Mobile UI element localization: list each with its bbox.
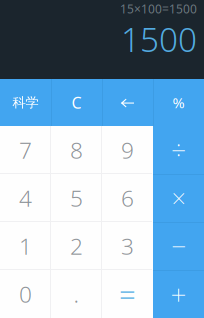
staticText: 7 [19, 135, 32, 165]
button[interactable]: . [51, 270, 102, 318]
staticText: 1500 [121, 17, 197, 61]
button[interactable]: 0 [0, 270, 51, 318]
button[interactable]: 科学 [0, 79, 51, 126]
staticText: 4 [19, 183, 32, 213]
button[interactable]: − [153, 222, 204, 270]
button[interactable]: 3 [102, 222, 153, 270]
staticText: 9 [121, 135, 134, 165]
button[interactable]: % [153, 79, 204, 126]
button[interactable]: 1 [0, 222, 51, 270]
button[interactable]: Backspace [102, 79, 153, 126]
button[interactable]: 2 [51, 222, 102, 270]
button[interactable]: ÷ [153, 126, 204, 174]
staticText: = [119, 274, 136, 313]
staticText: 6 [121, 183, 134, 213]
staticText: 3 [121, 231, 134, 261]
staticText: 8 [70, 135, 83, 165]
button[interactable]: 6 [102, 174, 153, 222]
staticText: % [172, 93, 184, 112]
staticText: 1 [19, 231, 32, 261]
staticText: 2 [70, 231, 83, 261]
staticText: ÷ [171, 132, 186, 168]
button[interactable]: C [51, 79, 102, 126]
staticText: − [171, 228, 186, 264]
button[interactable]: = [102, 270, 153, 318]
button[interactable]: 5 [51, 174, 102, 222]
button[interactable]: 8 [51, 126, 102, 174]
staticText: 科学 [12, 94, 38, 111]
button[interactable]: + [153, 270, 204, 318]
staticText: + [170, 275, 186, 313]
staticText: 0 [19, 279, 32, 309]
staticText: × [171, 181, 185, 215]
button[interactable]: 4 [0, 174, 51, 222]
button[interactable]: 7 [0, 126, 51, 174]
button[interactable]: 9 [102, 126, 153, 174]
staticText: 15×100=1500 [120, 1, 197, 17]
staticText: C [71, 92, 81, 113]
staticText: . [73, 279, 79, 309]
button[interactable]: × [153, 174, 204, 222]
staticText: 5 [70, 183, 83, 213]
